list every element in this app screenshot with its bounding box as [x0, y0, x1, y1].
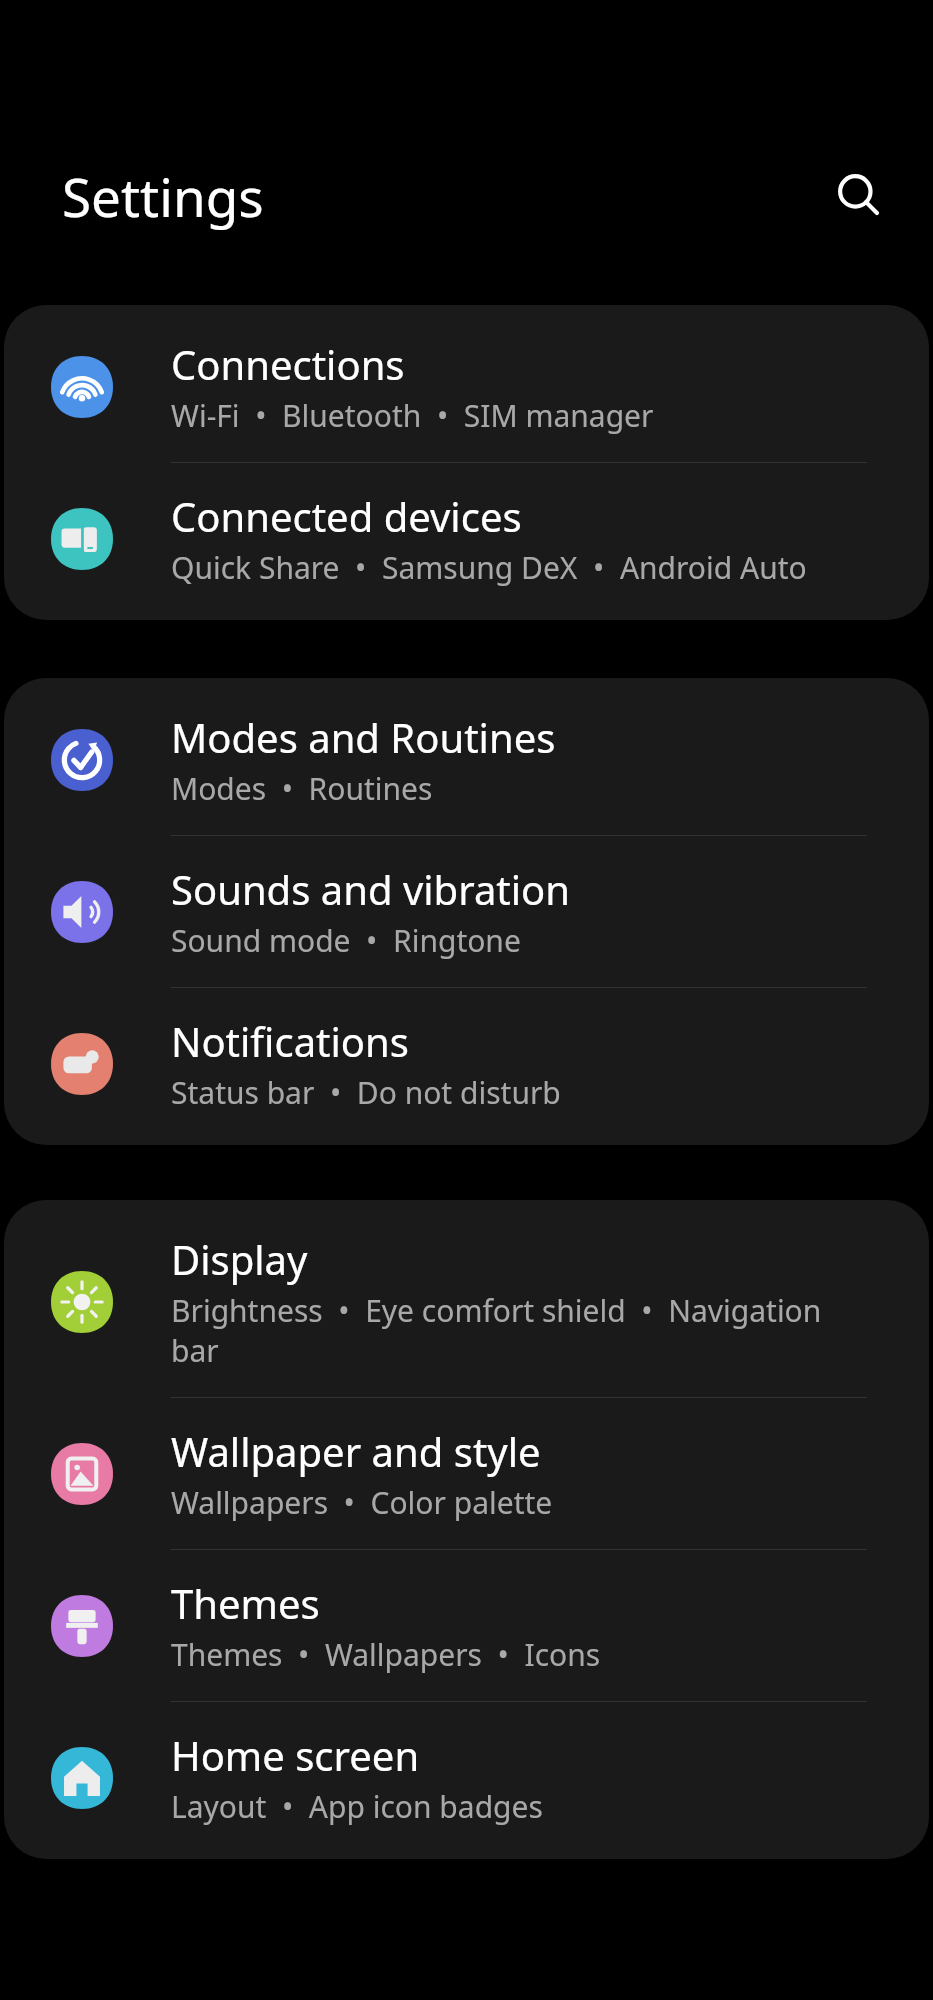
button[interactable]: Sounds and vibration [4, 836, 929, 987]
staticText: Status bar • Do not disturb [171, 1072, 561, 1113]
staticText: Modes • Routines [171, 768, 433, 809]
staticText: Wallpapers • Color palette [171, 1482, 553, 1523]
button[interactable]: Display [4, 1206, 929, 1397]
staticText: Connected devices [171, 489, 522, 543]
staticText: Themes [171, 1576, 320, 1630]
staticText: Themes • Wallpapers • Icons [171, 1634, 601, 1675]
button[interactable]: Search [823, 160, 895, 232]
staticText: Wi-Fi • Bluetooth • SIM manager [171, 395, 654, 436]
staticText: Display [171, 1232, 308, 1286]
button[interactable]: Modes and Routines [4, 684, 929, 835]
staticText: Home screen [171, 1728, 420, 1782]
button[interactable]: Wallpaper and style [4, 1398, 929, 1549]
button[interactable]: Connected devices [4, 463, 929, 614]
staticText: Sound mode • Ringtone [171, 920, 521, 961]
staticText: Notifications [171, 1014, 409, 1068]
staticText: Layout • App icon badges [171, 1786, 543, 1827]
staticText: Settings [62, 160, 264, 232]
staticText: Modes and Routines [171, 710, 556, 764]
staticText: Sounds and vibration [171, 862, 570, 916]
staticText: Brightness • Eye comfort shield • Naviga… [171, 1290, 867, 1371]
button[interactable]: Notifications [4, 988, 929, 1139]
staticText: Quick Share • Samsung DeX • Android Auto [171, 547, 807, 588]
button[interactable]: Connections [4, 311, 929, 462]
button[interactable]: Home screen [4, 1702, 929, 1853]
button[interactable]: Themes [4, 1550, 929, 1701]
staticText: Connections [171, 337, 405, 391]
staticText: Wallpaper and style [171, 1424, 541, 1478]
